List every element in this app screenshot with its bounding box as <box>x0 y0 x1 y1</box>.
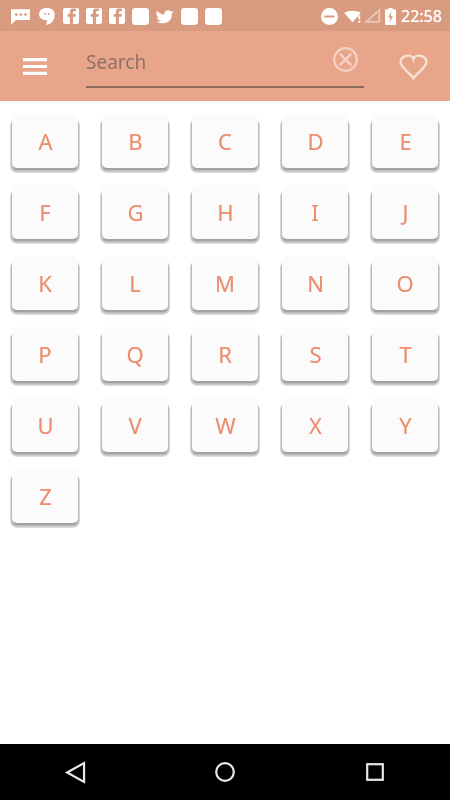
staticText: Search <box>86 49 147 75</box>
staticText: N <box>307 268 324 298</box>
staticText: J <box>402 197 409 227</box>
button[interactable]: Recent apps <box>300 744 450 800</box>
staticText: Q <box>126 339 144 369</box>
staticText: R <box>218 339 232 369</box>
staticText: W <box>215 410 236 440</box>
button[interactable]: X <box>282 398 348 452</box>
button[interactable]: P <box>12 327 78 381</box>
staticText: M <box>215 268 235 298</box>
staticText: O <box>396 268 414 298</box>
button[interactable]: G <box>102 185 168 239</box>
button[interactable]: V <box>102 398 168 452</box>
button[interactable]: Home <box>150 744 300 800</box>
button[interactable]: F <box>12 185 78 239</box>
button[interactable]: A <box>12 114 78 168</box>
staticText: 22:58 <box>401 5 442 27</box>
button[interactable]: Back <box>0 744 150 800</box>
staticText: V <box>128 410 142 440</box>
staticText: S <box>309 339 322 369</box>
button[interactable]: L <box>102 256 168 310</box>
staticText: C <box>218 126 232 156</box>
staticText: K <box>38 268 52 298</box>
button[interactable]: I <box>282 185 348 239</box>
button[interactable]: U <box>12 398 78 452</box>
button[interactable]: Search <box>86 42 364 88</box>
staticText: D <box>307 126 324 156</box>
staticText: I <box>311 197 319 227</box>
staticText: E <box>399 126 412 156</box>
button[interactable]: J <box>372 185 438 239</box>
staticText: L <box>129 268 141 298</box>
button[interactable]: Open navigation menu <box>13 44 57 88</box>
button[interactable]: D <box>282 114 348 168</box>
staticText: B <box>128 126 143 156</box>
button[interactable]: Z <box>12 469 78 523</box>
staticText: Y <box>399 410 412 440</box>
staticText: P <box>38 339 52 369</box>
button[interactable]: B <box>102 114 168 168</box>
staticText: G <box>127 197 144 227</box>
button[interactable]: H <box>192 185 258 239</box>
button[interactable]: Q <box>102 327 168 381</box>
staticText: T <box>399 339 412 369</box>
staticText: Z <box>39 481 52 511</box>
staticText: X <box>309 410 322 440</box>
button[interactable]: Y <box>372 398 438 452</box>
button[interactable]: M <box>192 256 258 310</box>
button[interactable]: E <box>372 114 438 168</box>
staticText: F <box>39 197 51 227</box>
button[interactable]: Favourites <box>391 44 435 88</box>
staticText: U <box>37 410 54 440</box>
staticText: A <box>38 126 53 156</box>
button[interactable]: C <box>192 114 258 168</box>
staticText: H <box>217 197 234 227</box>
button[interactable]: Clear search <box>323 37 367 81</box>
button[interactable]: S <box>282 327 348 381</box>
button[interactable]: N <box>282 256 348 310</box>
button[interactable]: T <box>372 327 438 381</box>
button[interactable]: W <box>192 398 258 452</box>
button[interactable]: R <box>192 327 258 381</box>
button[interactable]: K <box>12 256 78 310</box>
button[interactable]: O <box>372 256 438 310</box>
